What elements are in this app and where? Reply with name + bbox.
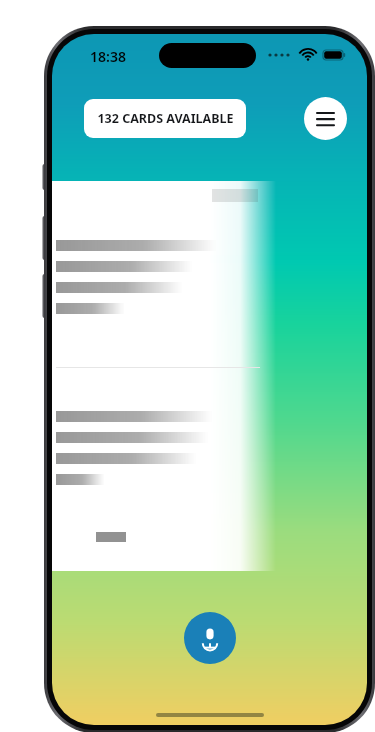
button[interactable]: Voice input [184,612,236,664]
button[interactable]: Menu [304,97,347,140]
button[interactable]: 132 CARDS AVAILABLE [84,99,246,138]
staticText: 18:38 [90,47,126,66]
staticText: 132 CARDS AVAILABLE [97,110,234,127]
